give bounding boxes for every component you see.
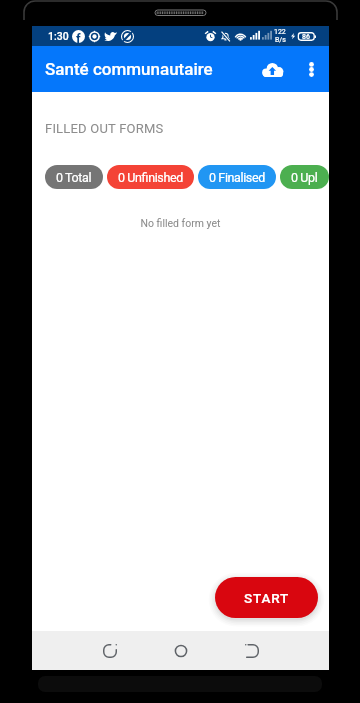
button[interactable]: 0 Unfinished [107,165,194,189]
staticText: 1:30 [48,30,69,42]
staticText: START [244,590,290,606]
staticText: 0 Finalised [209,170,265,185]
staticText: 0 Total [56,170,92,185]
staticText: 86 [302,33,310,41]
button[interactable]: More options [295,53,327,85]
staticText: f [76,31,81,44]
button[interactable]: Recents [90,631,129,670]
staticText: 0 Uploaded [291,170,318,185]
button[interactable]: 0 Finalised [198,165,276,189]
button[interactable]: Back [232,631,271,670]
button[interactable]: Upload [254,50,292,88]
button[interactable]: Home [161,631,200,670]
button[interactable]: 0 Uploaded [280,165,329,189]
staticText: Santé communautaire [45,59,213,79]
staticText: 0 Unfinished [118,170,183,185]
staticText: No filled form yet [32,217,329,229]
button[interactable]: START [215,577,318,618]
staticText: 122 [274,28,286,36]
staticText: B/s [275,36,286,44]
staticText: FILLED OUT FORMS [45,121,164,136]
button[interactable]: 0 Total [45,165,103,189]
